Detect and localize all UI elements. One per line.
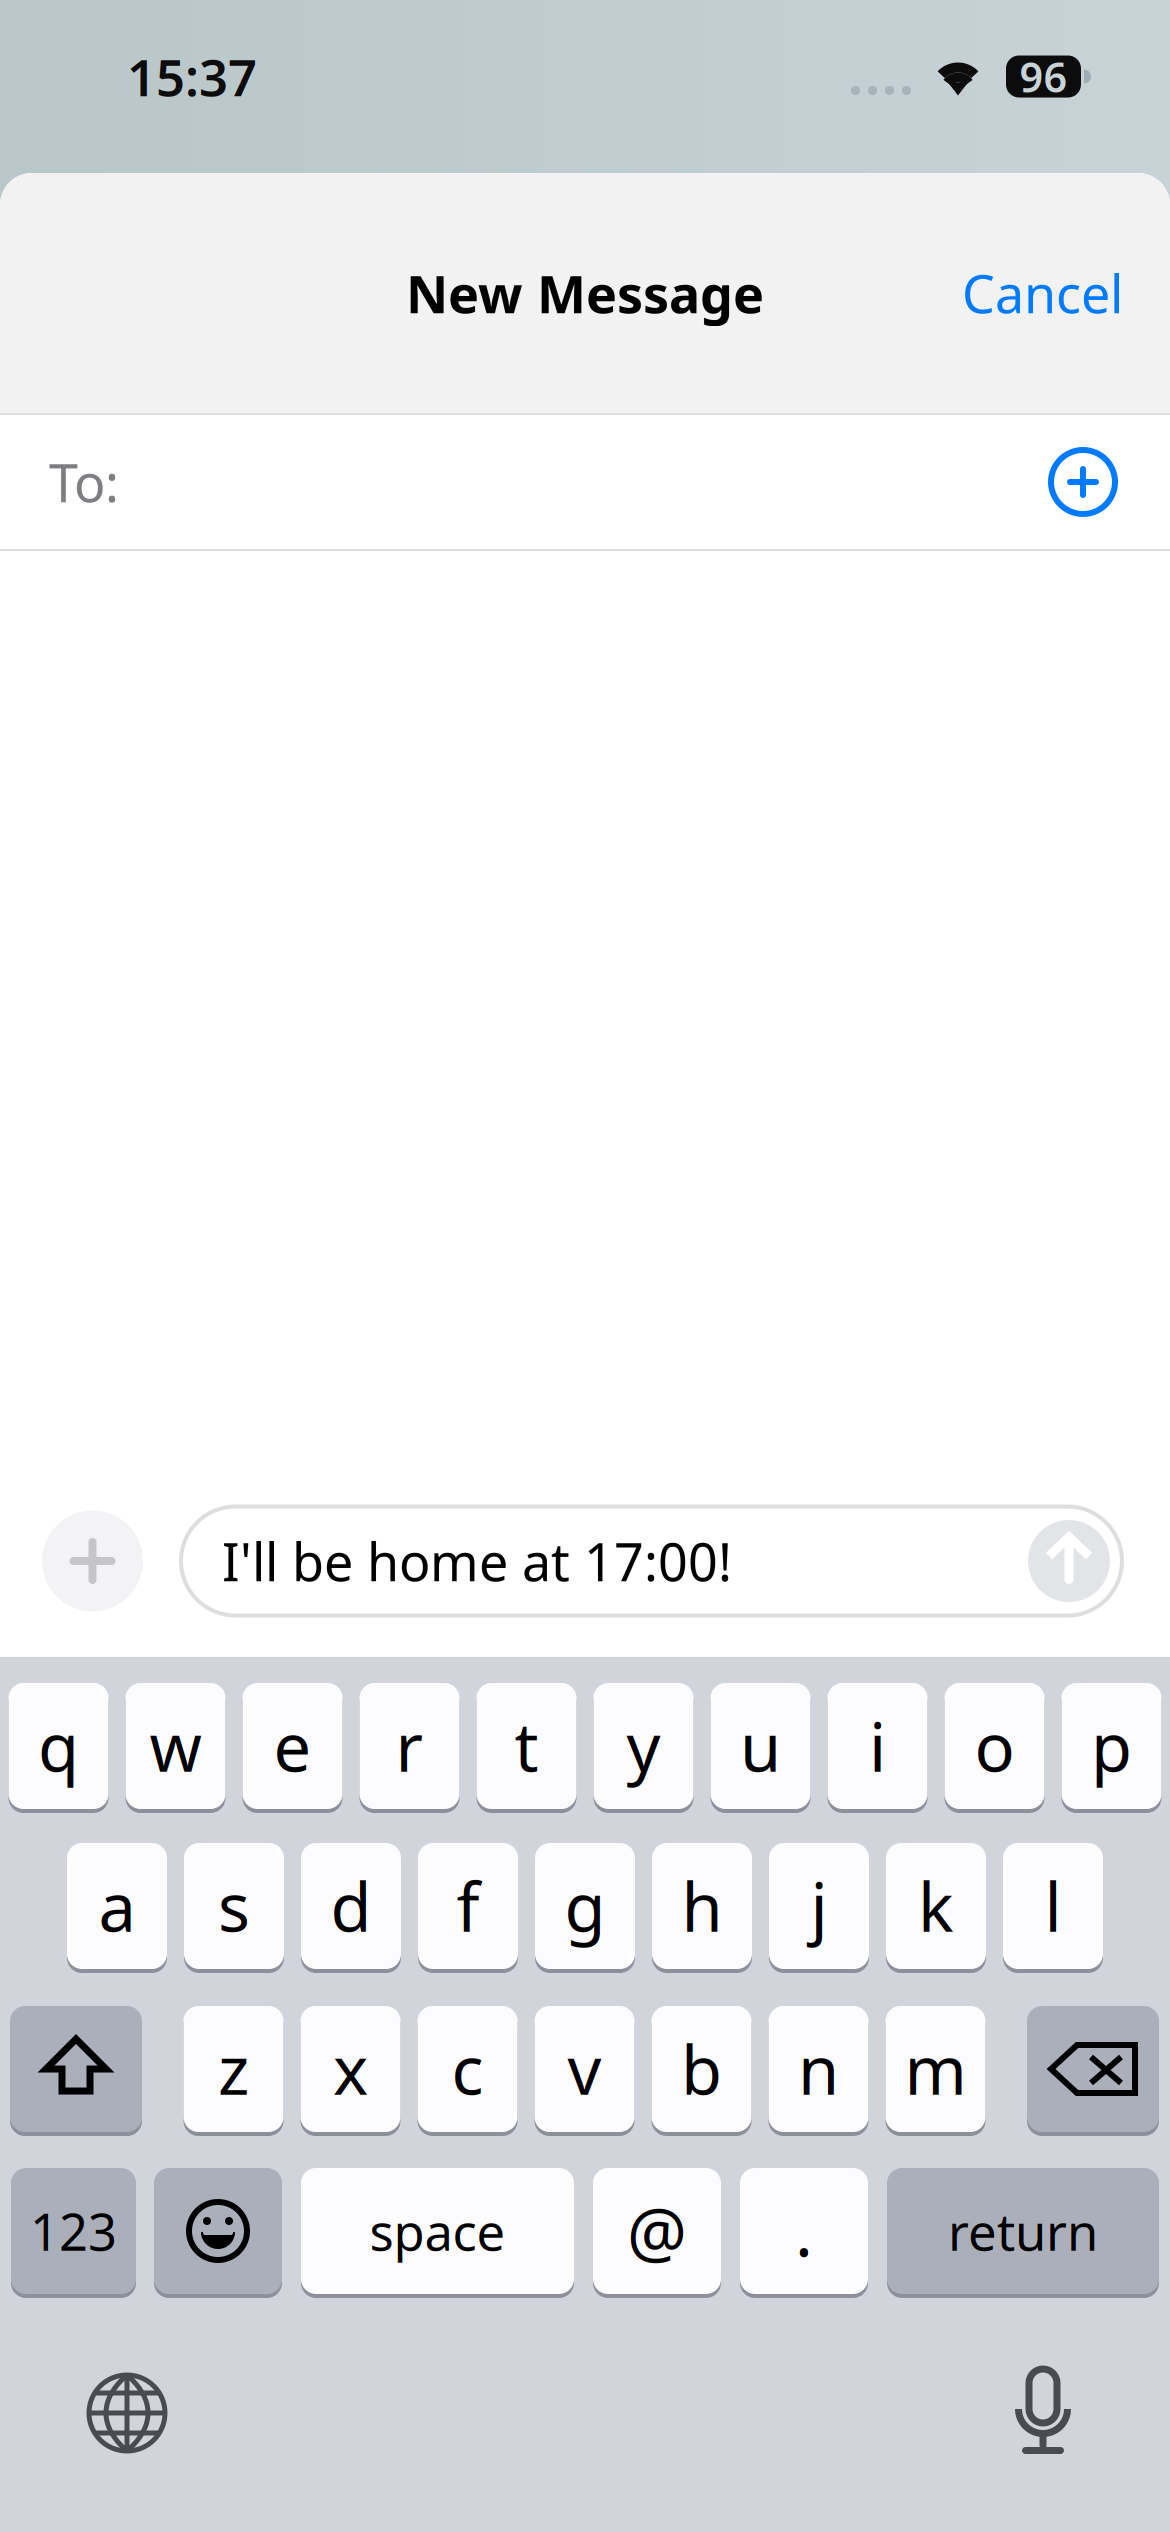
staticText: . xyxy=(795,2187,813,2275)
staticText: Cancel xyxy=(962,258,1123,328)
staticText: t xyxy=(514,1702,538,1790)
button[interactable]: t xyxy=(476,1683,576,1809)
staticText: w xyxy=(149,1702,201,1790)
button[interactable]: Emoji xyxy=(154,2168,282,2294)
staticText: q xyxy=(38,1702,79,1790)
button[interactable]: o xyxy=(944,1683,1044,1809)
staticText: 123 xyxy=(30,2197,117,2265)
button[interactable]: Shift xyxy=(10,2006,142,2132)
button[interactable]: Add attachment xyxy=(42,1510,143,1611)
button[interactable]: v xyxy=(534,2006,634,2132)
staticText: n xyxy=(798,2025,839,2113)
staticText: g xyxy=(564,1862,605,1950)
button[interactable]: z xyxy=(183,2006,283,2132)
button[interactable]: q xyxy=(8,1683,108,1809)
button[interactable]: m xyxy=(885,2006,985,2132)
button[interactable]: return xyxy=(887,2168,1159,2294)
button[interactable]: g xyxy=(535,1843,635,1969)
button[interactable]: d xyxy=(301,1843,401,1969)
staticText: 15:37 xyxy=(127,43,257,110)
staticText: k xyxy=(918,1862,954,1950)
staticText: f xyxy=(456,1862,479,1950)
button[interactable]: c xyxy=(417,2006,517,2132)
button[interactable]: 123 xyxy=(11,2168,136,2294)
staticText: z xyxy=(218,2025,249,2113)
staticText: c xyxy=(451,2025,483,2113)
button[interactable]: j xyxy=(769,1843,869,1969)
staticText: v xyxy=(567,2025,601,2113)
button[interactable]: @ xyxy=(593,2168,721,2294)
staticText: I'll be home at 17:00! xyxy=(222,1526,732,1596)
staticText: 96 xyxy=(1019,49,1067,104)
staticText: New Message xyxy=(406,258,764,328)
button[interactable]: Switch keyboard xyxy=(87,2373,167,2453)
button[interactable]: s xyxy=(184,1843,284,1969)
staticText: x xyxy=(333,2025,368,2113)
staticText: o xyxy=(974,1702,1014,1790)
button[interactable]: y xyxy=(593,1683,693,1809)
button[interactable]: Cancel xyxy=(952,242,1133,344)
button[interactable]: w xyxy=(125,1683,225,1809)
button[interactable]: Send xyxy=(1028,1520,1110,1602)
button[interactable]: e xyxy=(242,1683,342,1809)
staticText: b xyxy=(681,2025,722,2113)
button[interactable]: h xyxy=(652,1843,752,1969)
staticText: h xyxy=(681,1862,722,1950)
button[interactable]: u xyxy=(710,1683,810,1809)
staticText: r xyxy=(395,1702,423,1790)
button[interactable]: a xyxy=(67,1843,167,1969)
button[interactable]: l xyxy=(1003,1843,1103,1969)
button[interactable]: b xyxy=(651,2006,751,2132)
button[interactable]: f xyxy=(418,1843,518,1969)
staticText: s xyxy=(218,1862,250,1950)
staticText: To: xyxy=(49,447,119,517)
button[interactable]: Dictation xyxy=(1015,2369,1071,2457)
button[interactable]: . xyxy=(740,2168,868,2294)
button[interactable]: r xyxy=(359,1683,459,1809)
staticText: e xyxy=(273,1702,311,1790)
button[interactable]: space xyxy=(301,2168,574,2294)
staticText: a xyxy=(98,1862,135,1950)
staticText: space xyxy=(369,2197,505,2265)
button[interactable]: x xyxy=(300,2006,400,2132)
staticText: i xyxy=(869,1702,886,1790)
staticText: j xyxy=(810,1862,827,1950)
button[interactable]: Backspace xyxy=(1027,2006,1159,2132)
button[interactable]: n xyxy=(768,2006,868,2132)
button[interactable]: i xyxy=(827,1683,927,1809)
staticText: y xyxy=(626,1702,660,1790)
staticText: l xyxy=(1044,1862,1061,1950)
staticText: u xyxy=(740,1702,781,1790)
button[interactable]: k xyxy=(886,1843,986,1969)
button[interactable]: Add contact xyxy=(1043,442,1123,522)
staticText: @ xyxy=(627,2187,687,2275)
staticText: m xyxy=(904,2025,966,2113)
staticText: p xyxy=(1091,1702,1132,1790)
button[interactable]: p xyxy=(1061,1683,1161,1809)
staticText: d xyxy=(330,1862,371,1950)
staticText: return xyxy=(948,2197,1098,2265)
